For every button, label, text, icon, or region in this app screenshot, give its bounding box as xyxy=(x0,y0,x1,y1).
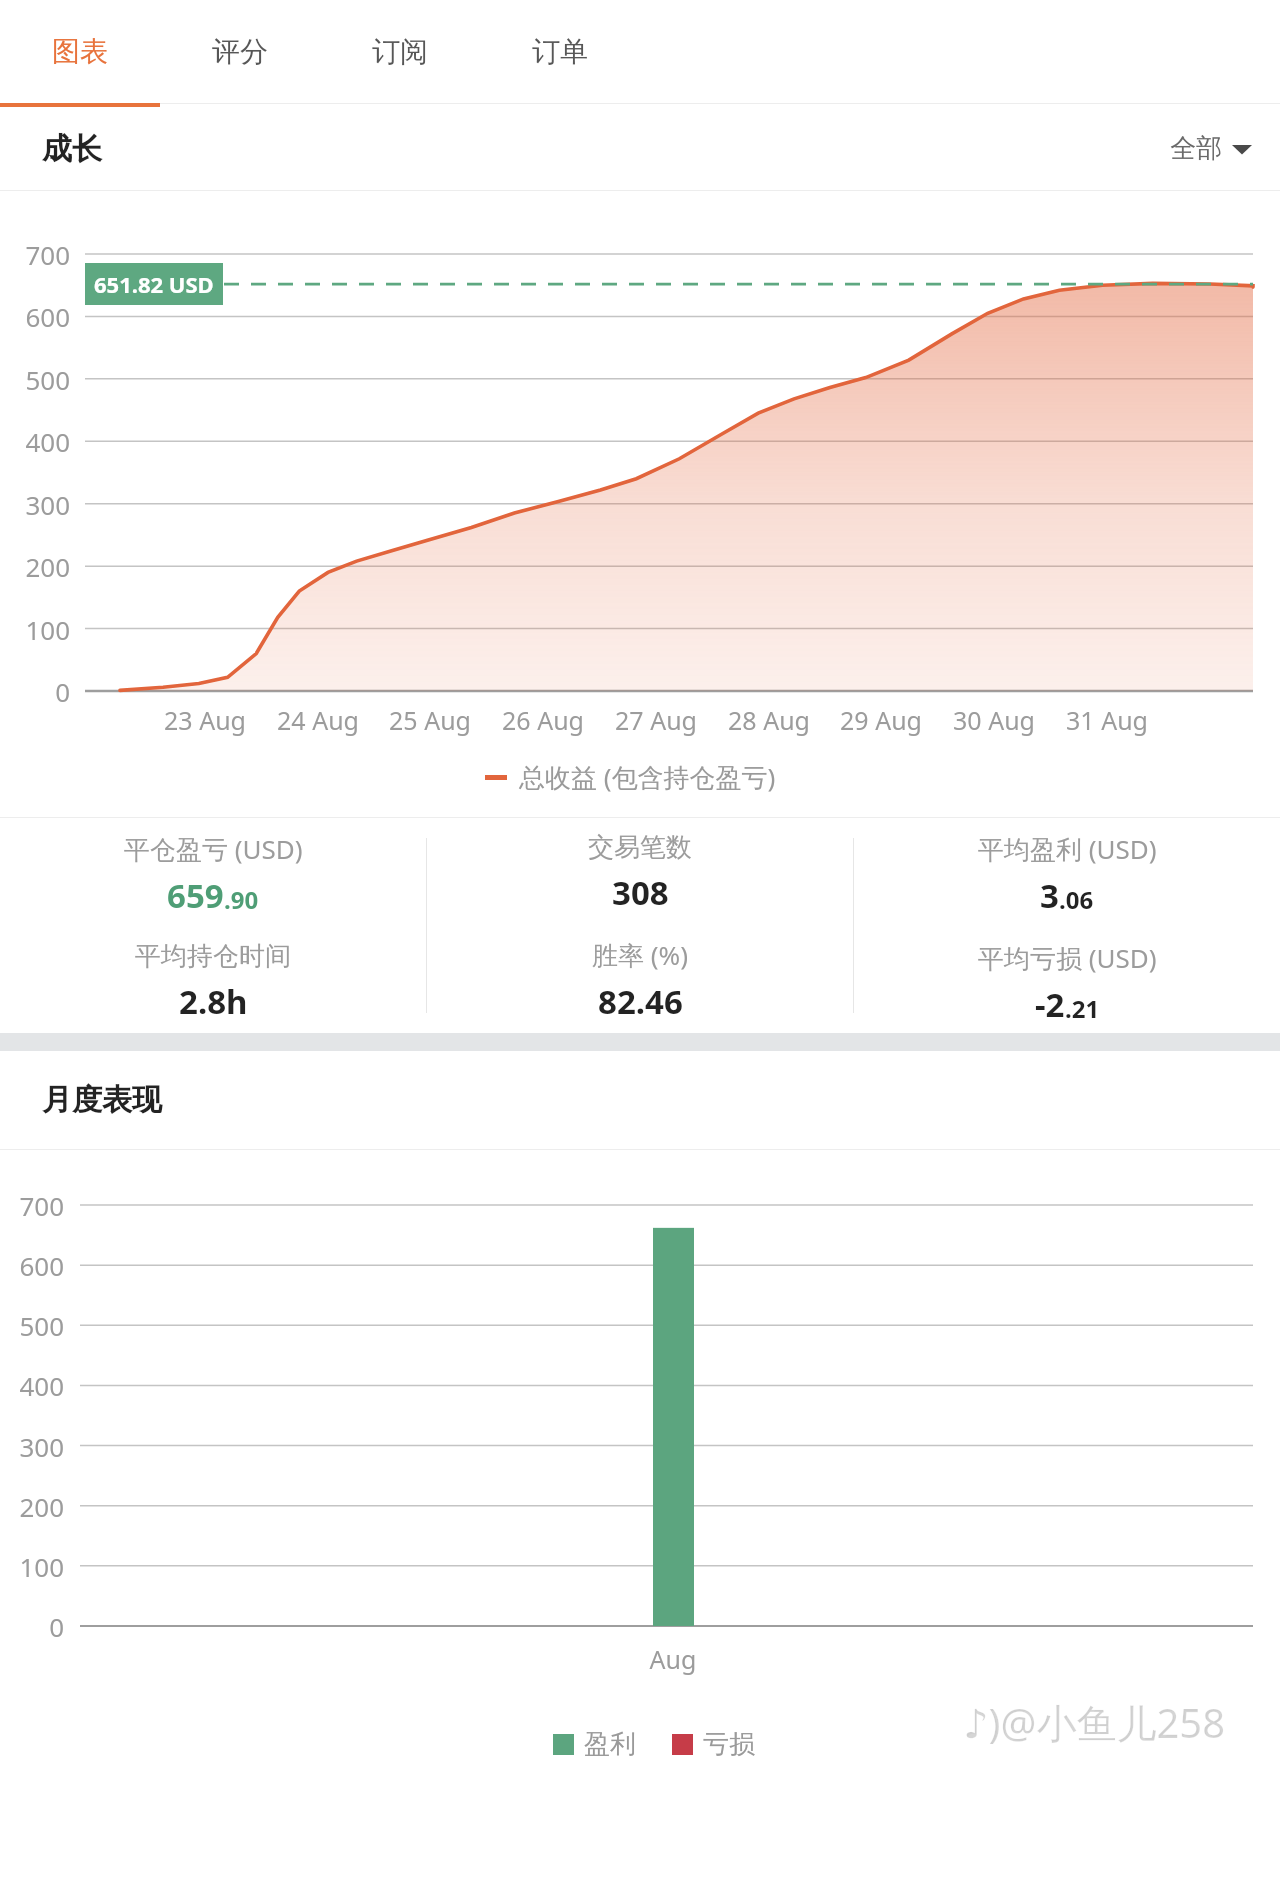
staticText: 300 xyxy=(0,1429,64,1464)
staticText: 659 xyxy=(167,873,224,918)
staticText: 651.82 USD xyxy=(94,269,214,299)
staticText: 图表 xyxy=(52,34,108,69)
staticText: 26 Aug xyxy=(483,703,603,737)
staticText: 31 Aug xyxy=(1047,703,1167,737)
staticText: 亏损 xyxy=(703,1728,755,1761)
staticText: 82.46 xyxy=(598,979,683,1024)
staticText: 评分 xyxy=(212,34,268,69)
staticText: .21 xyxy=(1065,992,1100,1025)
staticText: 100 xyxy=(0,612,70,647)
button[interactable]: 图表 xyxy=(0,0,160,103)
staticText: 平均盈利 (USD) xyxy=(978,831,1157,867)
staticText: 平均持仓时间 xyxy=(135,940,291,973)
button[interactable]: 评分 xyxy=(160,0,320,103)
staticText: ♪)@小鱼儿258 xyxy=(963,1695,1226,1750)
staticText: 平均亏损 (USD) xyxy=(978,940,1157,976)
staticText: 总收益 (包含持仓盈亏) xyxy=(519,759,776,795)
staticText: 100 xyxy=(0,1549,64,1584)
staticText: 0 xyxy=(0,674,70,709)
staticText: 27 Aug xyxy=(596,703,716,737)
staticText: 700 xyxy=(0,237,70,272)
staticText: 600 xyxy=(0,299,70,334)
staticText: 0 xyxy=(0,1609,64,1644)
staticText: 200 xyxy=(0,1489,64,1524)
staticText: 3 xyxy=(1040,873,1059,918)
staticText: 平仓盈亏 (USD) xyxy=(124,831,303,867)
staticText: 400 xyxy=(0,424,70,459)
staticText: 400 xyxy=(0,1368,64,1403)
staticText: 600 xyxy=(0,1248,64,1283)
staticText: 29 Aug xyxy=(821,703,941,737)
staticText: 2.8h xyxy=(179,979,248,1024)
staticText: 500 xyxy=(0,362,70,397)
button[interactable]: 订单 xyxy=(480,0,640,103)
staticText: .06 xyxy=(1059,883,1094,916)
other: Filter xyxy=(1232,142,1252,156)
staticText: 200 xyxy=(0,549,70,584)
staticText: 订单 xyxy=(532,34,588,69)
staticText: 25 Aug xyxy=(370,703,490,737)
staticText: 308 xyxy=(612,870,669,915)
staticText: 胜率 (%) xyxy=(592,937,688,973)
staticText: 交易笔数 xyxy=(588,831,692,864)
staticText: 成长 xyxy=(42,130,102,168)
staticText: 300 xyxy=(0,487,70,522)
button[interactable]: 订阅 xyxy=(320,0,480,103)
staticText: ♪)@小鱼儿258 xyxy=(965,1697,1228,1752)
staticText: 500 xyxy=(0,1308,64,1343)
staticText: 28 Aug xyxy=(709,703,829,737)
staticText: 订阅 xyxy=(372,34,428,69)
staticText: 全部 xyxy=(1170,132,1222,165)
staticText: -2 xyxy=(1035,982,1065,1027)
staticText: 23 Aug xyxy=(145,703,265,737)
staticText: 盈利 xyxy=(584,1728,636,1761)
staticText: 24 Aug xyxy=(258,703,378,737)
staticText: 30 Aug xyxy=(934,703,1054,737)
staticText: 月度表现 xyxy=(42,1081,162,1119)
staticText: 700 xyxy=(0,1188,64,1223)
staticText: .90 xyxy=(224,883,259,916)
button[interactable]: 全部 xyxy=(1170,132,1252,165)
staticText: Aug xyxy=(613,1642,733,1676)
